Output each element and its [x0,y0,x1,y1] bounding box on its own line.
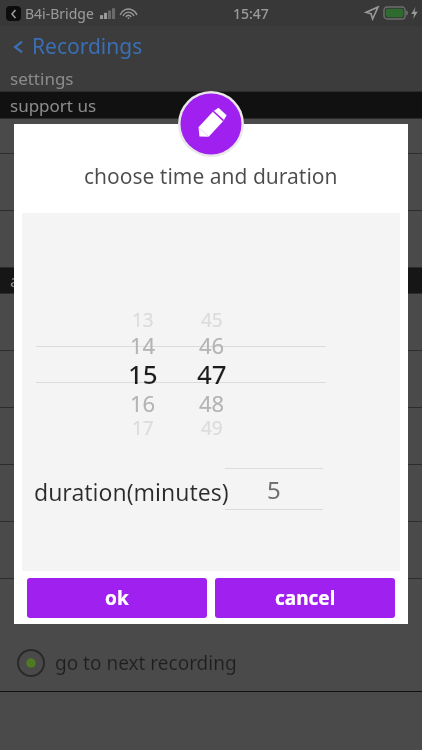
button[interactable]: 15 [113,356,173,386]
staticText: 46 [199,330,225,360]
button[interactable]: 47 [182,356,242,386]
button[interactable]: 16 [113,388,173,418]
button[interactable] [0,119,422,153]
button[interactable]: cancel [215,578,395,618]
button[interactable]: Edit [178,91,244,157]
button[interactable] [0,465,422,521]
button[interactable]: 5 [225,468,323,510]
button[interactable]: ok [27,578,207,618]
button[interactable]: 14 [113,330,173,360]
staticText: 14 [130,330,156,360]
staticText: 15:47 [233,4,269,23]
button[interactable]: 45 [182,305,242,335]
button[interactable]: 17 [113,413,173,443]
button[interactable] [0,351,422,407]
staticText: Recordings [32,32,143,61]
staticText: choose time and duration [84,162,338,191]
staticText: settings [10,67,74,90]
staticText: 17 [132,415,154,441]
button[interactable] [0,154,422,210]
button[interactable] [0,408,422,464]
staticText: go to next recording [55,650,237,676]
staticText: 16 [130,388,156,418]
button[interactable]: 46 [182,330,242,360]
button[interactable] [0,522,422,578]
staticText: 48 [199,388,225,418]
button[interactable]: Recordings [0,26,422,66]
staticText: cancel [275,585,336,611]
staticText: 49 [201,415,223,441]
button[interactable]: 48 [182,388,242,418]
staticText: duration(minutes) [34,476,229,507]
staticText: 15 [128,356,158,386]
button[interactable]: 13 [113,305,173,335]
staticText: a [10,269,20,292]
staticText: 13 [132,307,154,333]
staticText: 5 [267,473,281,506]
button[interactable]: settings [0,66,422,91]
button[interactable]: a [0,268,422,293]
staticText: 45 [201,307,223,333]
staticText: 47 [197,356,227,386]
button[interactable]: go to next recording [0,635,422,691]
staticText: B4i-Bridge [25,4,94,23]
staticText: support us [10,94,97,117]
button[interactable] [0,211,422,267]
staticText: ok [105,585,129,611]
button[interactable]: 49 [182,413,242,443]
button[interactable] [0,294,422,350]
button[interactable]: support us [0,92,422,118]
